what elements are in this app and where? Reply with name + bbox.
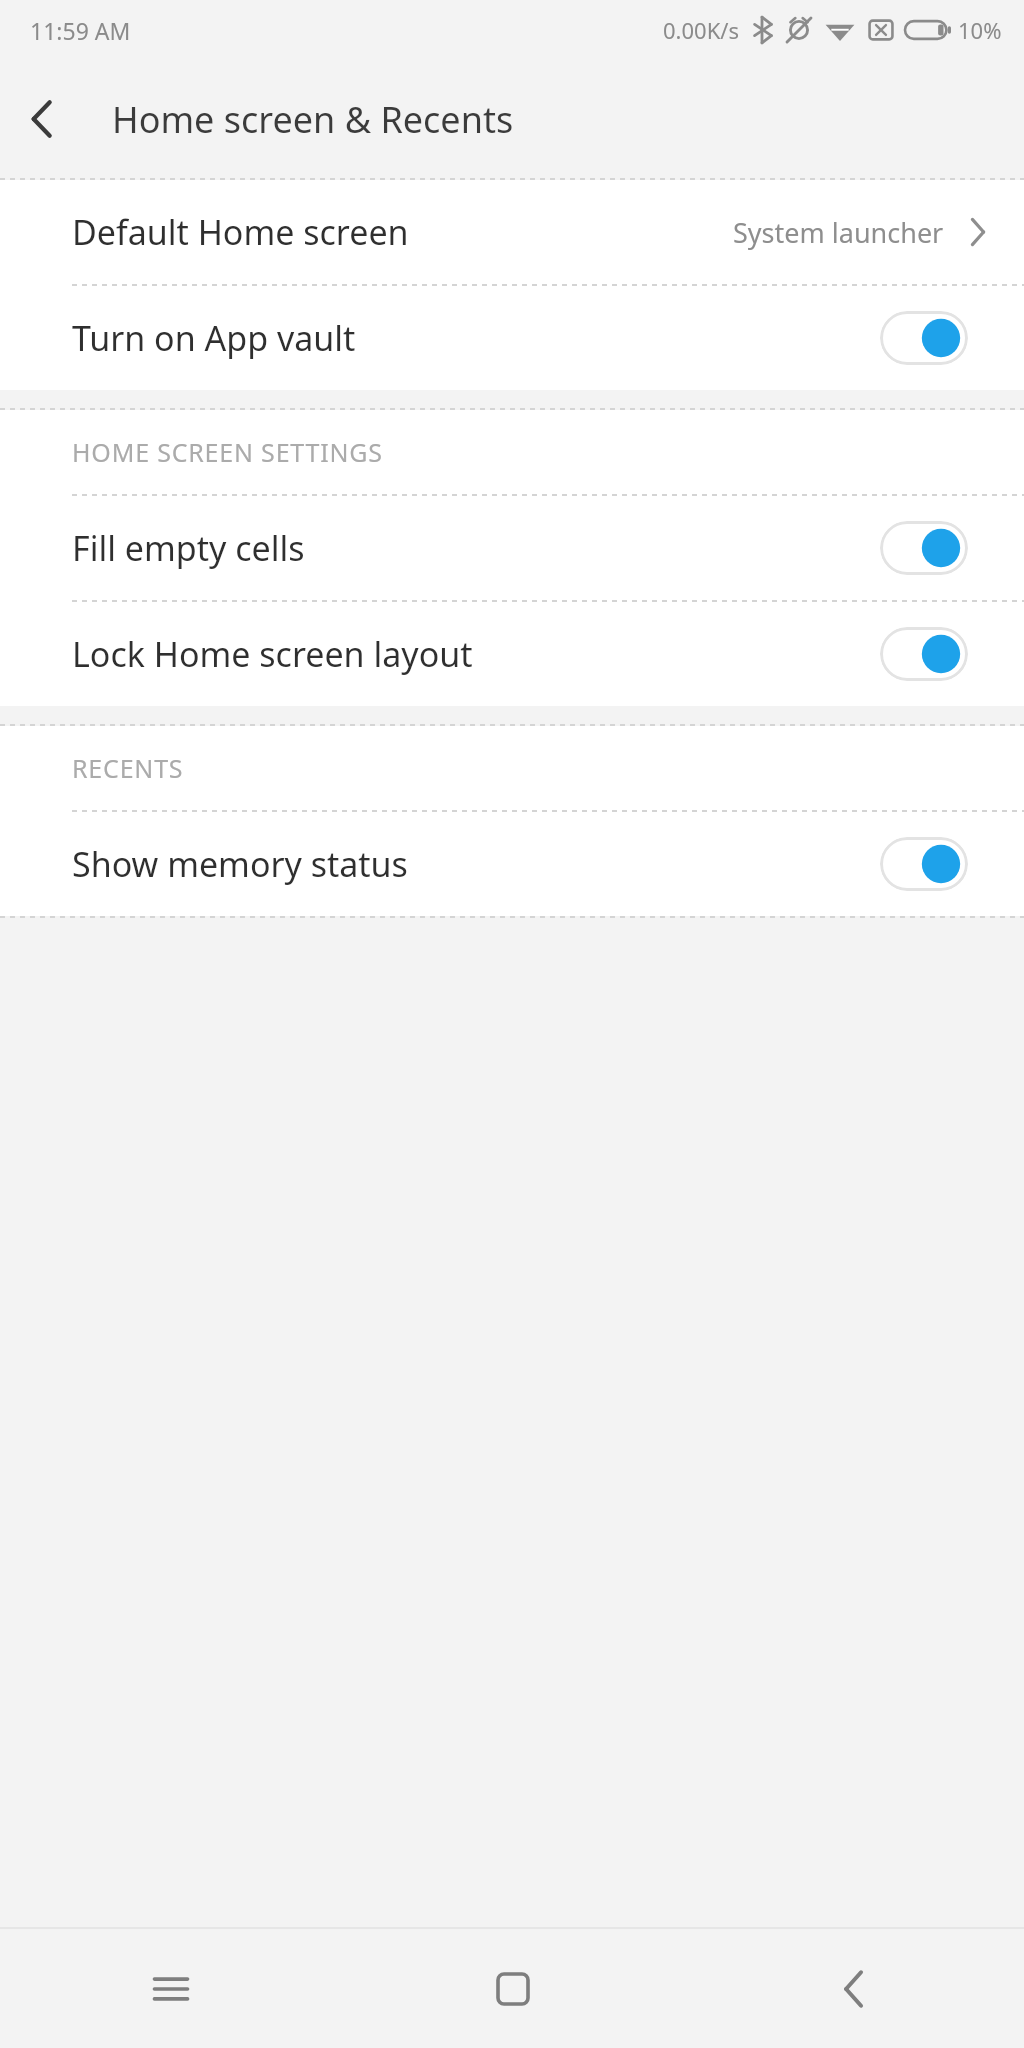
button[interactable]: Lock Home screen layout: [0, 602, 1024, 706]
button[interactable]: Show memory status: [0, 812, 1024, 916]
staticText: Lock Home screen layout: [72, 631, 473, 677]
staticText: Turn on App vault: [72, 315, 356, 361]
staticText: Fill empty cells: [72, 525, 305, 571]
staticText: Show memory status: [72, 841, 408, 887]
button[interactable]: Fill empty cells: [0, 496, 1024, 600]
staticText: System launcher: [733, 214, 944, 251]
staticText: RECENTS: [72, 751, 184, 785]
staticText: 10%: [958, 15, 1002, 45]
button[interactable]: Recent apps: [0, 1930, 342, 2048]
button[interactable]: Back: [0, 77, 84, 161]
staticText: Home screen & Recents: [112, 95, 514, 144]
staticText: 0.00K/s: [663, 15, 739, 45]
button[interactable]: Home: [342, 1930, 683, 2048]
button[interactable]: Default Home screen: [0, 180, 1024, 284]
staticText: 11:59 AM: [30, 15, 131, 46]
button[interactable]: Turn on App vault: [0, 286, 1024, 390]
button[interactable]: Back: [683, 1930, 1024, 2048]
staticText: Default Home screen: [72, 209, 409, 255]
staticText: HOME SCREEN SETTINGS: [72, 435, 383, 469]
